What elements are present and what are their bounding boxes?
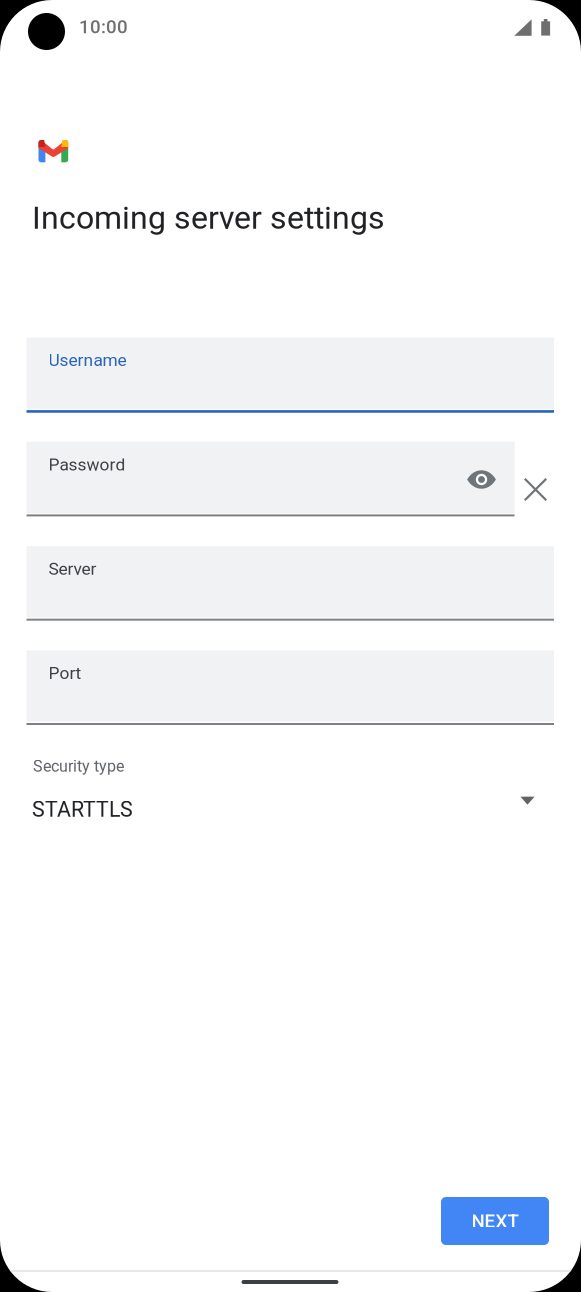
- staticText: Server: [48, 559, 96, 579]
- staticText: 10:00: [79, 16, 128, 38]
- button[interactable]: Show password: [455, 459, 507, 500]
- staticText: NEXT: [471, 1210, 518, 1232]
- staticText: Security type: [33, 757, 124, 776]
- staticText: Port: [48, 663, 81, 683]
- button[interactable]: Port: [26, 650, 554, 726]
- button[interactable]: NEXT: [441, 1197, 549, 1245]
- button[interactable]: Password: [26, 442, 514, 518]
- button[interactable]: Server: [26, 546, 554, 622]
- button[interactable]: Clear password: [524, 478, 547, 501]
- staticText: Username: [48, 350, 126, 370]
- button[interactable]: Security type: [32, 757, 534, 823]
- button[interactable]: Username: [26, 337, 554, 413]
- staticText: STARTTLS: [32, 797, 133, 822]
- staticText: Incoming server settings: [32, 199, 385, 236]
- staticText: Password: [48, 454, 125, 475]
